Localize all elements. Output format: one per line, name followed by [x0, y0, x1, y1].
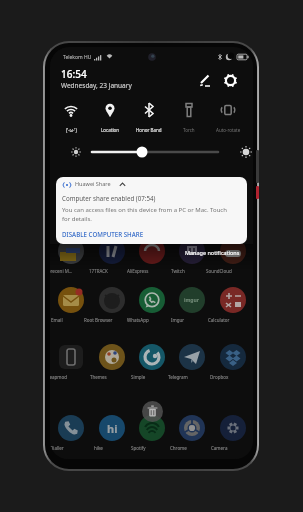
button[interactable]: Telegram: [177, 342, 207, 386]
staticText: imgur: [184, 297, 200, 304]
button[interactable]: Themes: [97, 342, 127, 386]
button[interactable]: SoundCloud: [218, 236, 248, 280]
staticText: Simple: [131, 374, 146, 380]
staticText: Computer share enabled (07:54): [62, 194, 156, 202]
button[interactable]: [50, 140, 253, 166]
button[interactable]: [142, 401, 163, 422]
button[interactable]: 17TRACK: [97, 236, 127, 280]
button[interactable]: Chrome: [177, 413, 207, 457]
staticText: Location: [101, 127, 120, 133]
staticText: SoundCloud: [206, 268, 232, 274]
staticText: Seapmod: [50, 374, 67, 380]
staticText: Torch: [183, 127, 195, 133]
button[interactable]: DISABLE COMPUTER SHARE: [62, 228, 144, 240]
staticText: 16:54: [61, 67, 87, 81]
button[interactable]: [197, 73, 213, 89]
staticText: Imgur: [171, 317, 185, 323]
button[interactable]: [222, 72, 239, 89]
button[interactable]: Spotify: [137, 413, 167, 457]
staticText: Dropbox: [210, 374, 229, 380]
staticText: ('·ω·'): [66, 127, 77, 133]
button[interactable]: Seapmod: [56, 342, 86, 386]
staticText: Twitch: [171, 268, 185, 274]
button[interactable]: Email: [56, 285, 86, 329]
button[interactable]: ('·ω·'): [50, 99, 93, 133]
staticText: Dialler: [50, 445, 64, 451]
button[interactable]: Dialler: [56, 413, 86, 457]
staticText: Telegram: [168, 374, 188, 380]
staticText: Telekom HU: [63, 54, 92, 61]
button[interactable]: Auto-rotate: [206, 99, 250, 133]
staticText: Debreceni M...: [50, 268, 72, 274]
button[interactable]: Root Browser: [97, 285, 127, 329]
button[interactable]: hike: [97, 413, 127, 457]
button[interactable]: Simple: [137, 342, 167, 386]
staticText: DISABLE COMPUTER SHARE: [62, 230, 144, 238]
button[interactable]: Huawei Share: [56, 177, 247, 244]
button[interactable]: AliExpress: [137, 236, 167, 280]
staticText: hi: [107, 421, 118, 436]
button[interactable]: WhatsApp: [137, 285, 167, 329]
staticText: Root Browser: [84, 317, 113, 323]
button[interactable]: Twitch: [177, 236, 207, 280]
staticText: for details.: [62, 215, 92, 223]
staticText: Calculator: [208, 317, 230, 323]
staticText: Manage notifications: [185, 249, 240, 256]
button[interactable]: Imgur: [177, 285, 207, 329]
staticText: Huawei Share: [75, 180, 111, 187]
staticText: Email: [51, 317, 63, 323]
button[interactable]: Debreceni M...: [56, 236, 86, 280]
button[interactable]: Location: [88, 99, 132, 133]
staticText: Honor Band: [136, 127, 162, 133]
staticText: WhatsApp: [127, 317, 149, 323]
staticText: Spotify: [131, 445, 146, 451]
staticText: hike: [94, 445, 103, 451]
staticText: AliExpress: [127, 268, 149, 274]
staticText: Auto-rotate: [216, 127, 241, 133]
button[interactable]: Torch: [167, 99, 211, 133]
button[interactable]: Camera: [218, 413, 248, 457]
button[interactable]: Dropbox: [218, 342, 248, 386]
staticText: Wednesday, 23 January: [61, 81, 132, 90]
button[interactable]: Calculator: [218, 285, 248, 329]
staticText: Themes: [90, 374, 107, 380]
staticText: 17TRACK: [89, 268, 108, 274]
staticText: Camera: [211, 445, 228, 451]
button[interactable]: Honor Band: [127, 99, 171, 133]
staticText: Chrome: [170, 445, 187, 451]
button[interactable]: Manage notifications: [185, 246, 253, 258]
staticText: You can access files on this device from…: [62, 206, 227, 214]
